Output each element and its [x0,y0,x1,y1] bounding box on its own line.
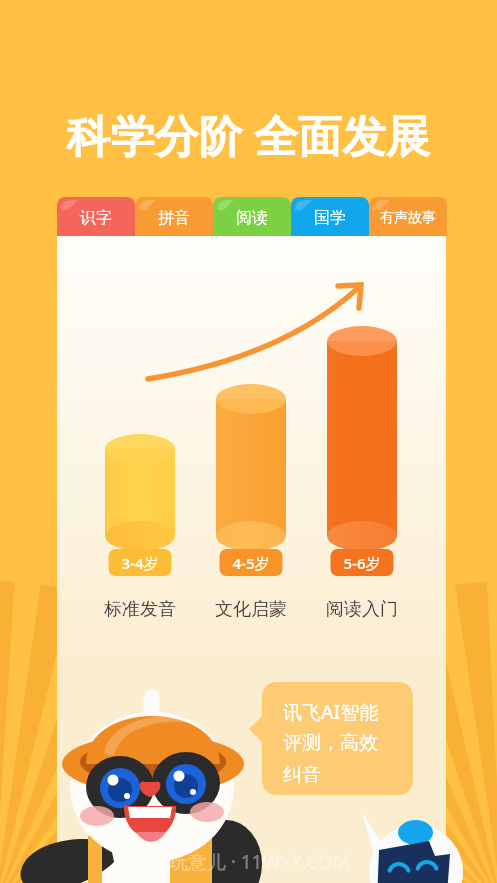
button[interactable]: 有声故事 [369,197,447,236]
button[interactable]: 国学 [291,197,369,236]
button[interactable]: 拼音 [135,197,213,236]
button[interactable]: 标准发音 [105,545,176,627]
button[interactable]: 识字 [57,197,135,236]
button[interactable]: 阅读 [213,197,291,236]
button[interactable]: 文化启蒙 [216,545,287,627]
button[interactable]: 阅读入门 [327,545,398,627]
